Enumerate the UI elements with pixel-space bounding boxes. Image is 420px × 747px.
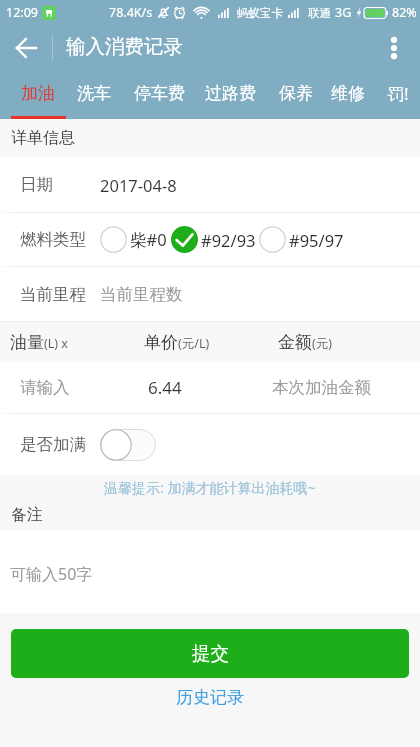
staticText: (元/L) — [178, 335, 210, 352]
staticText: 停车费 — [134, 83, 185, 104]
staticText: 本次加油金额 — [272, 377, 371, 398]
staticText: 78.4K/s — [109, 4, 153, 21]
button[interactable]: #95/97 — [259, 226, 344, 253]
button[interactable]: 加油 — [11, 70, 65, 116]
staticText: 温馨提示: 加满才能计算出油耗哦~ — [104, 478, 316, 497]
staticText: 维修 — [331, 83, 365, 104]
button[interactable]: 保养 — [267, 70, 324, 116]
staticText: 燃料类型 — [20, 229, 86, 250]
staticText: 备注 — [11, 505, 43, 525]
staticText: 罚! — [387, 82, 409, 105]
staticText: 可输入50字 — [10, 563, 93, 585]
button[interactable]: Full tank toggle — [100, 429, 156, 461]
button[interactable]: Back — [0, 25, 52, 70]
staticText: 油量 — [10, 332, 44, 353]
staticText: 蚂蚁宝卡 — [237, 6, 283, 20]
staticText: #95/97 — [289, 229, 344, 251]
staticText: 金额 — [278, 332, 312, 353]
staticText: 联通 — [308, 6, 331, 20]
button[interactable]: More options — [368, 25, 420, 70]
staticText: 6.44 — [148, 376, 182, 399]
staticText: 洗车 — [77, 83, 111, 104]
staticText: 提交 — [192, 642, 229, 665]
staticText: (元) — [312, 335, 333, 352]
staticText: 是否加满 — [20, 434, 86, 455]
staticText: 加油 — [21, 83, 55, 104]
staticText: 3G — [335, 4, 352, 21]
staticText: #92/93 — [201, 229, 256, 251]
staticText: 单价 — [144, 332, 178, 353]
staticText: 12:09 — [6, 4, 38, 21]
staticText: 当前里程数 — [100, 284, 183, 305]
button[interactable]: 可输入50字 — [0, 531, 420, 613]
staticText: 柴#0 — [130, 228, 167, 251]
button[interactable]: 日期 — [0, 157, 420, 212]
staticText: 82% — [392, 4, 417, 21]
button[interactable]: 罚! — [375, 70, 420, 116]
staticText: 请输入 — [20, 377, 70, 398]
staticText: 输入消费记录 — [66, 34, 183, 59]
button[interactable]: 洗车 — [66, 70, 121, 116]
staticText: 日期 — [20, 174, 53, 195]
button[interactable]: 历史记录 — [164, 685, 256, 710]
staticText: 当前里程 — [20, 284, 86, 305]
staticText: (L) x — [44, 335, 68, 352]
button[interactable]: 柴#0 — [100, 226, 167, 253]
button[interactable]: 当前里程 — [0, 267, 420, 321]
button[interactable]: #92/93 — [171, 226, 256, 253]
staticText: 保养 — [279, 83, 313, 104]
button[interactable]: 提交 — [11, 629, 409, 678]
staticText: 详单信息 — [11, 128, 75, 148]
button[interactable]: 维修 — [320, 70, 375, 116]
button[interactable]: 停车费 — [124, 70, 195, 116]
staticText: 2017-04-8 — [100, 174, 177, 196]
staticText: 过路费 — [205, 83, 256, 104]
button[interactable]: 过路费 — [195, 70, 266, 116]
